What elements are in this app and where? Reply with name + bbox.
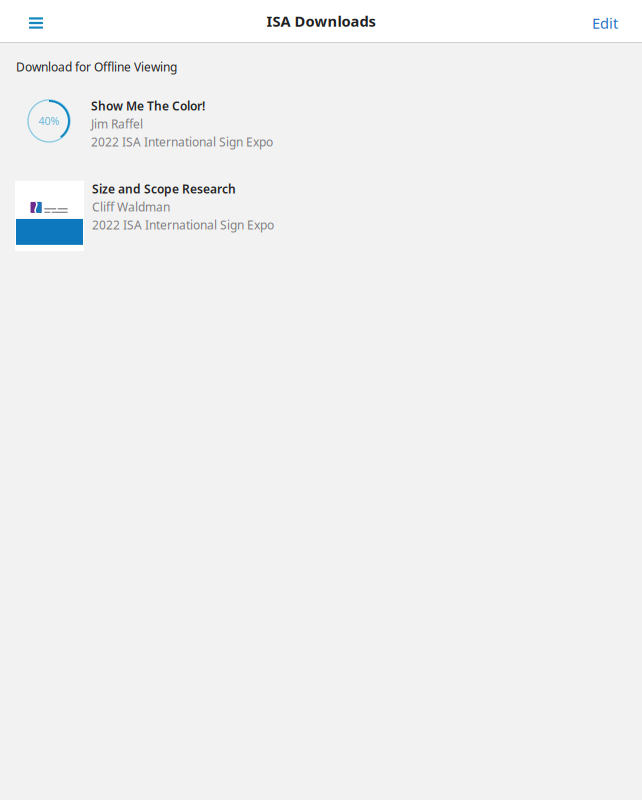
staticText: Download for Offline Viewing <box>16 59 177 75</box>
button[interactable]: 40% <box>0 86 642 150</box>
staticText: 2022 ISA International Sign Expo <box>92 217 274 233</box>
staticText: ISA Downloads <box>266 11 375 31</box>
staticText: 2022 ISA International Sign Expo <box>91 134 273 150</box>
staticText: Show Me The Color! <box>91 98 205 114</box>
staticText: Size and Scope Research <box>92 181 236 197</box>
button[interactable]: Edit <box>576 0 642 45</box>
staticText: Cliff Waldman <box>92 199 170 215</box>
button[interactable]: Size and Scope Research <box>0 169 642 251</box>
staticText: 40% <box>38 114 59 128</box>
button[interactable]: Menu <box>0 0 57 42</box>
staticText: Jim Raffel <box>91 116 143 132</box>
staticText: Edit <box>592 13 618 33</box>
